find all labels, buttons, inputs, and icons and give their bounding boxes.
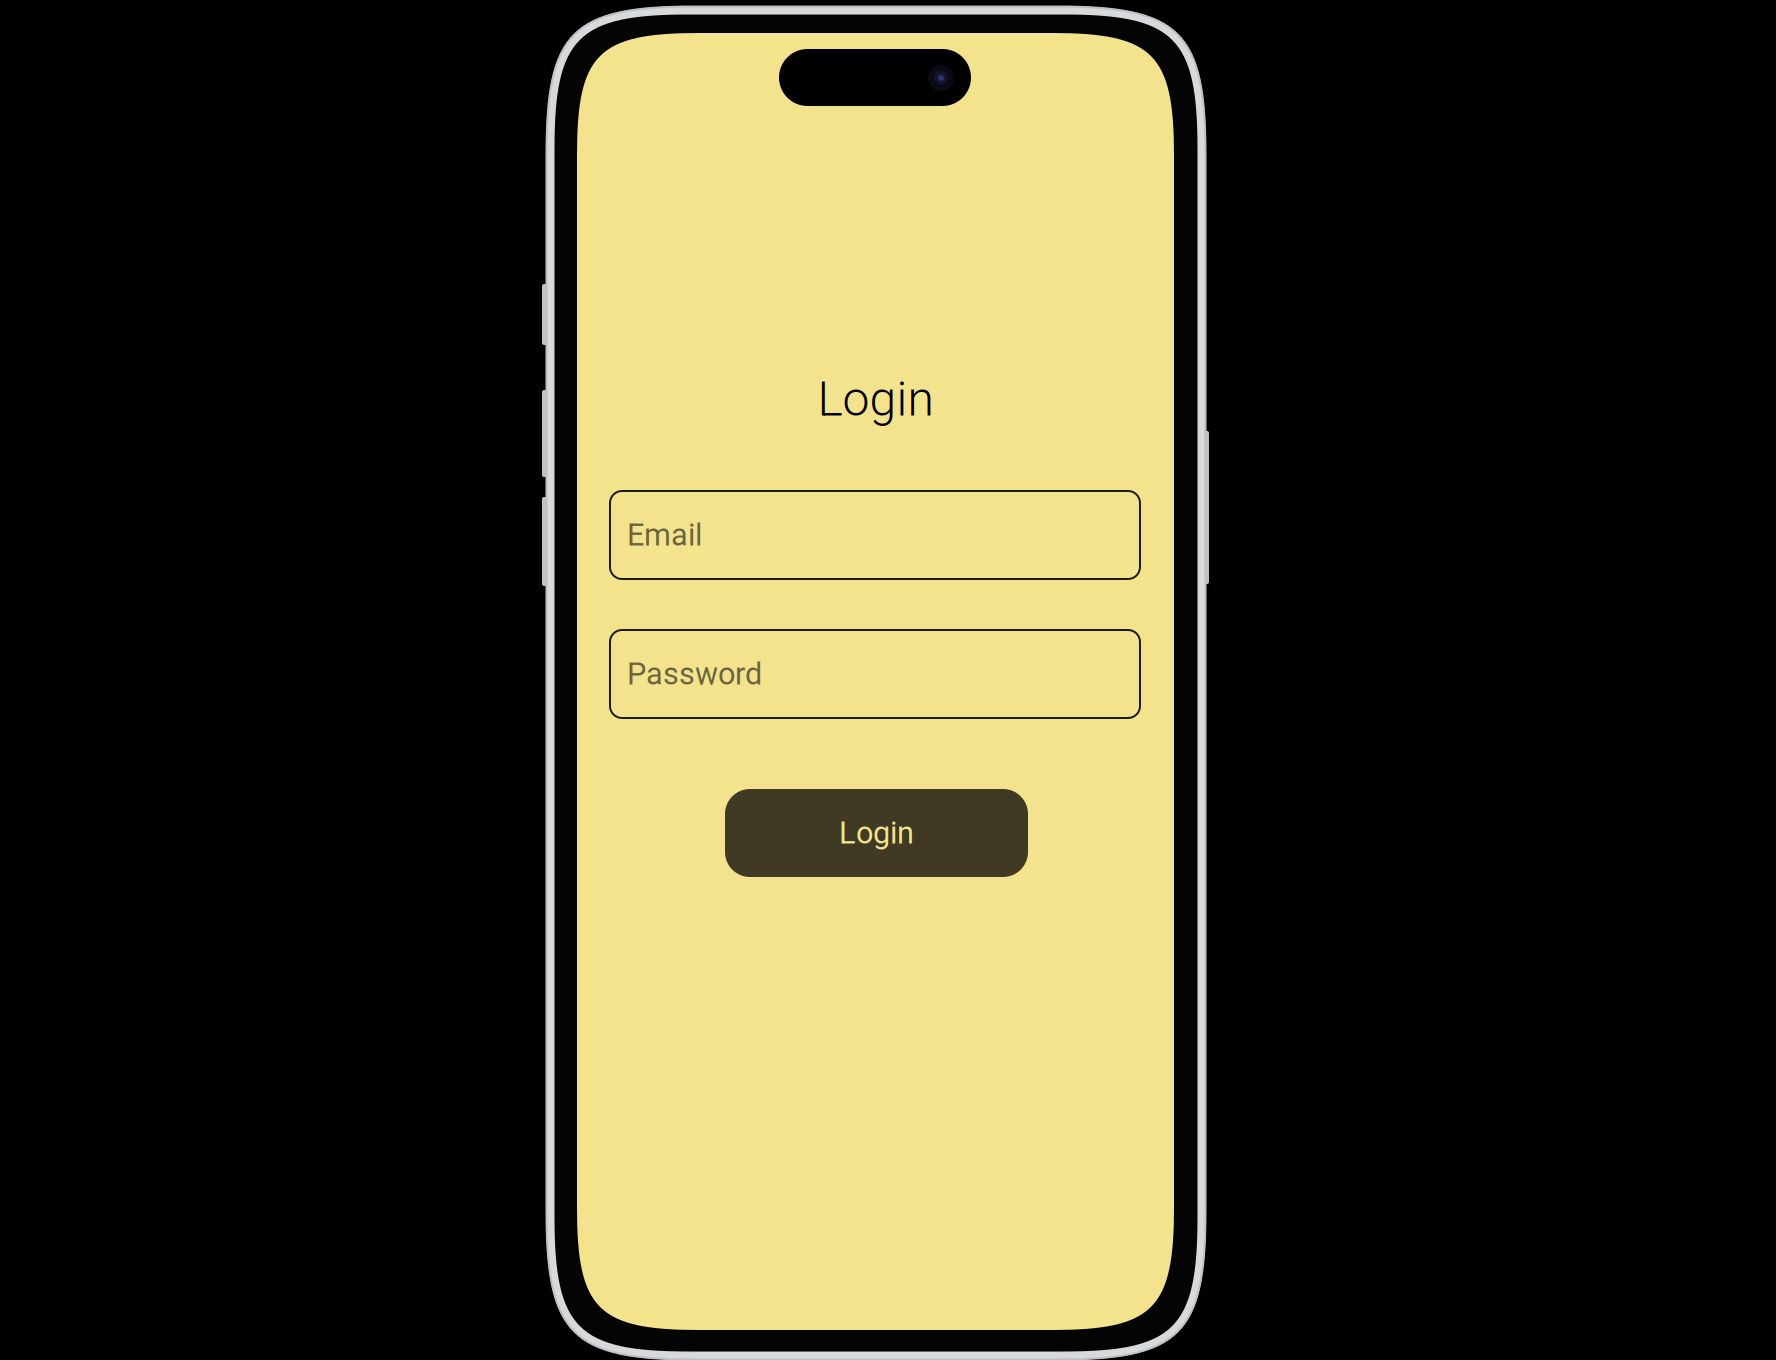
staticText: Login: [839, 815, 914, 851]
button[interactable]: Password: [610, 630, 1140, 718]
staticText: Password: [627, 656, 762, 692]
button[interactable]: Login: [725, 789, 1028, 877]
button[interactable]: Email: [610, 491, 1140, 579]
staticText: Email: [627, 517, 702, 553]
staticText: Login: [817, 371, 933, 427]
